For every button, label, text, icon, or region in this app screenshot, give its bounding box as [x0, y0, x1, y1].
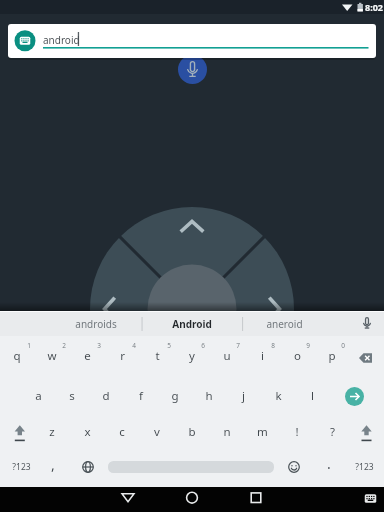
staticText: 2	[62, 341, 66, 350]
button[interactable]: w	[35, 341, 69, 371]
staticText: 3	[97, 341, 101, 350]
button[interactable]: x	[70, 417, 104, 447]
button[interactable]: l	[295, 381, 329, 411]
staticText: l	[311, 388, 314, 404]
button[interactable]: !	[280, 417, 314, 447]
button[interactable]: e	[70, 341, 104, 371]
staticText: ?123	[12, 461, 31, 473]
staticText: c	[119, 424, 125, 440]
button[interactable]: z	[35, 417, 69, 447]
button[interactable]: g	[158, 381, 192, 411]
button[interactable]: h	[192, 381, 226, 411]
staticText: ,	[51, 455, 55, 474]
staticText: o	[294, 348, 301, 364]
button[interactable]: r	[105, 341, 139, 371]
staticText: 8	[271, 341, 275, 350]
button[interactable]: i	[245, 341, 279, 371]
button[interactable]: c	[105, 417, 139, 447]
staticText: y	[189, 348, 195, 364]
button[interactable]: n	[210, 417, 244, 447]
button[interactable]: android	[8, 24, 376, 58]
staticText: 9	[306, 341, 310, 350]
staticText: t	[155, 348, 160, 364]
staticText: 4	[132, 341, 136, 350]
staticText: 6	[201, 341, 205, 350]
staticText: Android	[172, 317, 212, 331]
button[interactable]: .	[319, 451, 339, 475]
button[interactable]	[177, 487, 207, 512]
staticText: u	[223, 348, 231, 364]
staticText: android	[43, 33, 80, 47]
staticText: 7	[236, 341, 240, 350]
staticText: i	[261, 348, 264, 364]
staticText: h	[205, 388, 213, 404]
button[interactable]: m	[245, 417, 279, 447]
staticText: e	[84, 348, 91, 364]
staticText: 0	[341, 341, 345, 350]
staticText: androids	[75, 317, 117, 331]
staticText: g	[171, 388, 179, 404]
staticText: r	[120, 348, 125, 364]
staticText: n	[223, 424, 231, 440]
button[interactable]: q	[0, 341, 34, 371]
button[interactable]	[178, 55, 207, 84]
staticText: v	[154, 424, 160, 440]
staticText: j	[242, 388, 245, 404]
staticText: ?123	[355, 461, 374, 473]
button[interactable]: s	[55, 381, 89, 411]
button[interactable]	[358, 487, 384, 512]
button[interactable]	[241, 487, 271, 512]
button[interactable]: Android	[147, 313, 237, 335]
button[interactable]	[90, 207, 294, 411]
button[interactable]: ?	[315, 417, 349, 447]
staticText: 8:02	[365, 1, 383, 13]
button[interactable]: aneroid	[239, 313, 329, 335]
staticText: f	[139, 388, 143, 404]
button[interactable]: u	[210, 341, 244, 371]
button[interactable]	[345, 387, 364, 406]
staticText: aneroid	[266, 317, 303, 331]
button[interactable]: k	[261, 381, 295, 411]
button[interactable]: ,	[43, 452, 63, 476]
staticText: 5	[167, 341, 171, 350]
button[interactable]: p	[315, 341, 349, 371]
button[interactable]	[352, 420, 381, 444]
button[interactable]: d	[89, 381, 123, 411]
staticText: ?	[330, 424, 335, 440]
staticText: w	[47, 348, 57, 364]
staticText: z	[49, 424, 55, 440]
staticText: s	[69, 388, 75, 404]
button[interactable]: androids	[51, 313, 141, 335]
staticText: .	[327, 454, 331, 473]
button[interactable]: y	[175, 341, 209, 371]
button[interactable]: t	[140, 341, 174, 371]
button[interactable]: f	[124, 381, 158, 411]
staticText: b	[188, 424, 196, 440]
button[interactable]	[352, 344, 381, 368]
button[interactable]: b	[175, 417, 209, 447]
button[interactable]: v	[140, 417, 174, 447]
staticText: !	[295, 424, 299, 440]
staticText: a	[35, 388, 42, 404]
staticText: k	[275, 388, 282, 404]
staticText: d	[102, 388, 110, 404]
staticText: x	[84, 424, 91, 440]
button[interactable]: o	[280, 341, 314, 371]
staticText: 1	[27, 341, 31, 350]
button[interactable]	[5, 420, 34, 444]
button[interactable]	[113, 487, 143, 512]
staticText: q	[13, 348, 21, 364]
staticText: p	[328, 348, 336, 364]
button[interactable]: j	[226, 381, 260, 411]
button[interactable]: ?123	[347, 455, 381, 479]
button[interactable]: ?123	[4, 455, 38, 479]
button[interactable]: a	[21, 381, 55, 411]
staticText: m	[257, 424, 268, 440]
